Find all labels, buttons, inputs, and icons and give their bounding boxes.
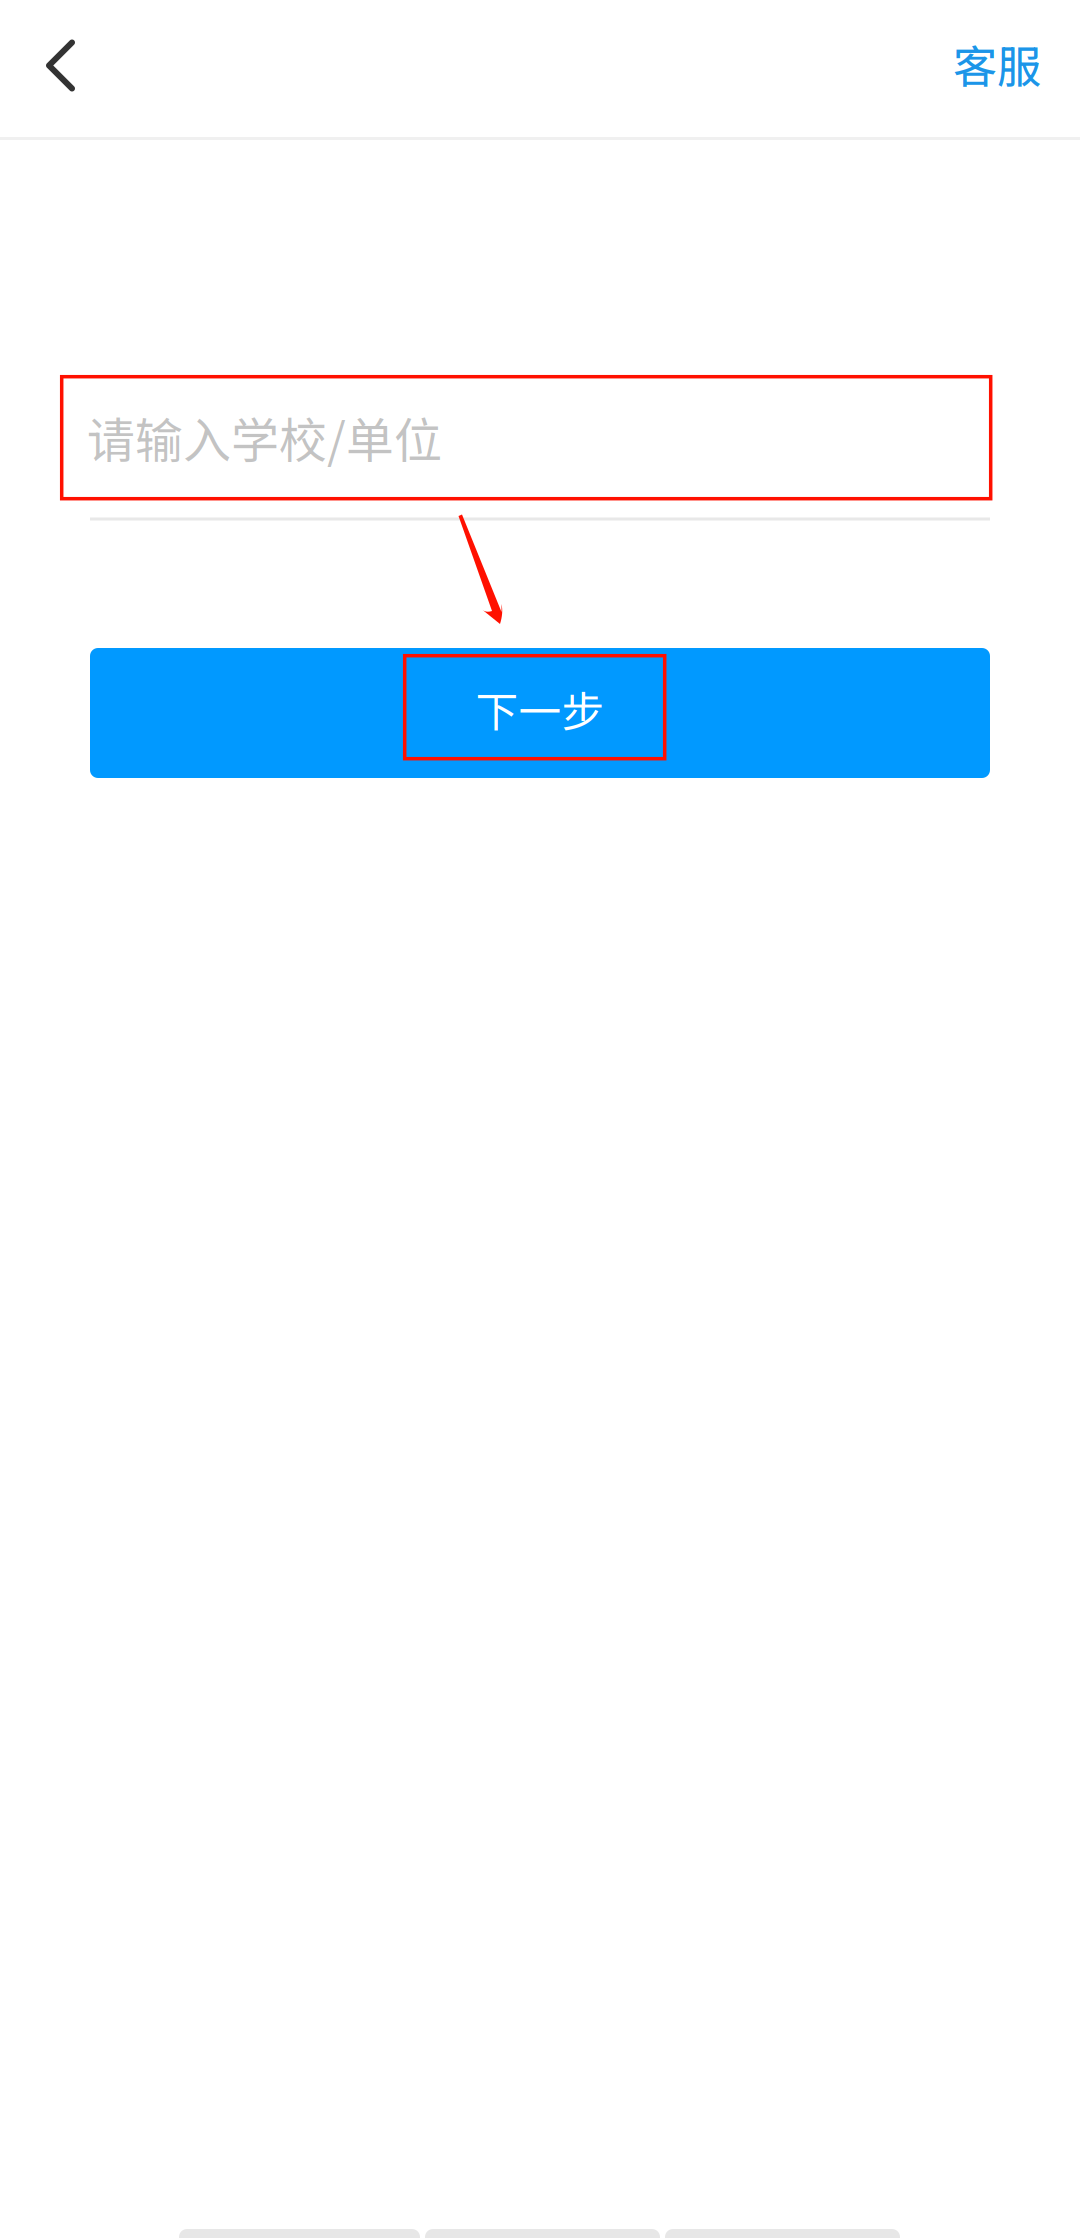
- staticText: 客服: [953, 32, 1041, 95]
- button[interactable]: 下一步: [90, 648, 990, 778]
- button[interactable]: 客服: [953, 0, 1080, 137]
- button[interactable]: 请输入学校/单位: [87, 376, 989, 498]
- staticText: 下一步: [475, 678, 604, 740]
- staticText: 请输入学校/单位: [87, 402, 442, 472]
- button[interactable]: Back: [0, 0, 109, 137]
